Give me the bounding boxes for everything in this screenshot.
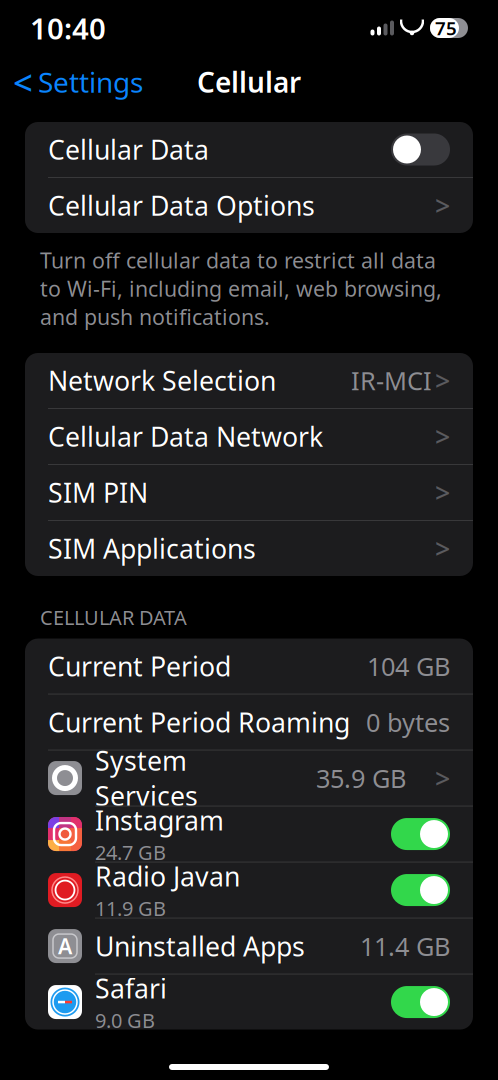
button[interactable]: A [25,918,473,973]
button[interactable]: Current Period [25,638,473,693]
staticText: > [435,760,450,796]
button[interactable]: Current Period Roaming [25,694,473,749]
staticText: > [435,475,450,510]
staticText: Radio Javan [95,859,240,894]
button[interactable]: < [0,60,156,104]
button[interactable]: Cellular Data Network [25,409,473,464]
staticText: Cellular Data Options [48,188,315,223]
staticText: CELLULAR DATA [40,604,187,631]
staticText: Safari [95,971,167,1006]
staticText: SIM PIN [48,475,148,510]
staticText: A [58,932,72,960]
staticText: 75 [435,16,457,40]
staticText: 9.0 GB [95,1007,155,1034]
button[interactable]: SIM Applications [25,521,473,576]
staticText: Instagram [95,803,224,838]
staticText: Cellular Data Network [48,419,323,454]
staticText: 35.9 GB [316,761,406,795]
button[interactable]: Instagram [25,806,473,861]
button[interactable]: Cellular Data [25,122,473,177]
staticText: Current Period Roaming [48,704,350,740]
staticText: 0 bytes [366,705,450,739]
staticText: Network Selection [48,363,276,398]
staticText: Turn off cellular data to restrict all d… [40,246,442,331]
staticText: < [13,59,33,105]
staticText: > [435,531,450,566]
staticText: Cellular Data [48,132,209,167]
button[interactable]: SIM PIN [25,465,473,520]
staticText: Uninstalled Apps [95,928,305,964]
button[interactable]: Network Selection [25,353,473,408]
staticText: > [435,188,450,223]
staticText: Current Period [48,648,231,684]
staticText: Settings [38,63,143,101]
staticText: 24.7 GB [95,839,166,866]
staticText: > [435,363,450,398]
staticText: SIM Applications [48,531,256,566]
staticText: IR-MCI [351,364,432,397]
staticText: 10:40 [30,8,106,47]
button[interactable]: System Services [25,750,473,805]
staticText: 11.9 GB [95,895,166,922]
button[interactable]: Radio Javan [25,862,473,917]
staticText: Cellular [197,63,301,101]
button[interactable]: Cellular Data Options [25,178,473,233]
button[interactable]: Safari [25,974,473,1029]
staticText: System Services [95,743,198,813]
staticText: 11.4 GB [360,929,450,963]
staticText: 104 GB [367,649,450,683]
staticText: > [435,419,450,454]
